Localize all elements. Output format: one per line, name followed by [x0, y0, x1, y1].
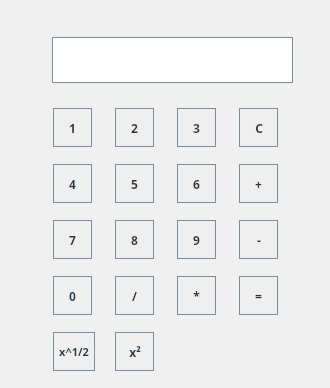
button[interactable]: = [239, 276, 278, 315]
staticText: 5 [131, 176, 138, 192]
staticText: 7 [69, 232, 76, 248]
button[interactable]: 5 [115, 164, 154, 203]
staticText: x² [129, 344, 141, 360]
button[interactable]: 3 [177, 108, 216, 147]
staticText: = [255, 288, 262, 304]
staticText: 8 [131, 232, 138, 248]
staticText: 3 [193, 120, 200, 136]
button[interactable]: 4 [53, 164, 92, 203]
staticText: + [255, 176, 262, 192]
button[interactable]: Calculator display [52, 37, 293, 83]
button[interactable]: 0 [53, 276, 92, 315]
button[interactable]: x^1/2 [53, 332, 95, 371]
staticText: 4 [69, 176, 76, 192]
staticText: - [257, 232, 261, 248]
staticText: * [193, 288, 200, 304]
button[interactable]: * [177, 276, 216, 315]
button[interactable]: / [115, 276, 154, 315]
button[interactable]: 8 [115, 220, 154, 259]
staticText: x^1/2 [59, 344, 89, 359]
button[interactable]: 6 [177, 164, 216, 203]
staticText: 9 [193, 232, 200, 248]
button[interactable]: - [239, 220, 278, 259]
staticText: 6 [193, 176, 200, 192]
staticText: 1 [69, 120, 76, 136]
staticText: 2 [131, 120, 138, 136]
button[interactable]: + [239, 164, 278, 203]
button[interactable]: 2 [115, 108, 154, 147]
staticText: C [255, 120, 263, 136]
staticText: / [132, 288, 137, 304]
button[interactable]: 1 [53, 108, 92, 147]
button[interactable]: C [239, 108, 278, 147]
button[interactable]: 9 [177, 220, 216, 259]
button[interactable]: 7 [53, 220, 92, 259]
staticText: 0 [69, 288, 76, 304]
button[interactable]: x² [115, 332, 154, 371]
